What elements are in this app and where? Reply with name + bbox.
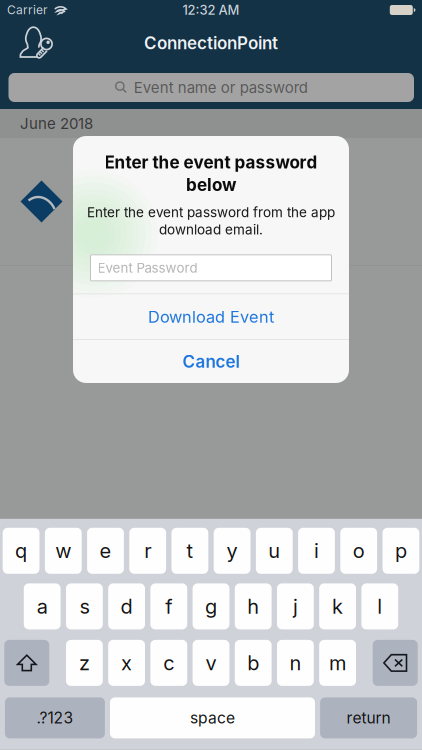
staticText: Carrier: [7, 3, 48, 17]
button[interactable]: e: [87, 528, 124, 574]
button[interactable]: j: [277, 583, 314, 629]
staticText: t: [186, 539, 193, 563]
button[interactable]: n: [277, 640, 314, 686]
button[interactable]: Download Event: [73, 294, 349, 339]
button[interactable]: a: [24, 583, 61, 629]
staticText: s: [79, 594, 89, 618]
staticText: below: [186, 175, 236, 195]
button[interactable]: d: [108, 583, 145, 629]
staticText: l: [377, 594, 382, 618]
button[interactable]: c: [150, 640, 187, 686]
button[interactable]: p: [382, 528, 419, 574]
button[interactable]: Shift: [4, 640, 49, 686]
button[interactable]: f: [150, 583, 187, 629]
button[interactable]: y: [214, 528, 250, 574]
button[interactable]: r: [129, 528, 166, 574]
staticText: p: [395, 539, 407, 563]
staticText: z: [79, 651, 90, 675]
button[interactable]: m: [319, 640, 356, 686]
staticText: h: [247, 594, 259, 618]
staticText: b: [247, 651, 259, 675]
staticText: q: [15, 539, 27, 563]
staticText: Enter the event password: [104, 152, 317, 173]
button[interactable]: .?123: [5, 697, 105, 738]
button[interactable]: g: [193, 583, 229, 629]
button[interactable]: Event name or password: [8, 73, 414, 102]
button[interactable]: b: [235, 640, 272, 686]
staticText: j: [293, 594, 298, 618]
staticText: ConnectionPoint: [144, 33, 278, 53]
staticText: Event name or password: [134, 78, 308, 96]
staticText: w: [55, 539, 71, 563]
button[interactable]: w: [45, 528, 82, 574]
button[interactable]: i: [298, 528, 335, 574]
staticText: Enter the event password from the app: [87, 204, 335, 220]
button[interactable]: Cancel: [73, 340, 349, 383]
staticText: Event Password: [97, 260, 197, 276]
staticText: e: [99, 539, 111, 563]
staticText: c: [163, 651, 174, 675]
staticText: v: [205, 651, 216, 675]
staticText: a: [37, 594, 48, 618]
staticText: k: [332, 594, 343, 618]
button[interactable]: return: [320, 697, 417, 738]
button[interactable]: x: [108, 640, 145, 686]
staticText: Cancel: [182, 351, 239, 372]
staticText: u: [268, 539, 280, 563]
button[interactable]: u: [256, 528, 293, 574]
staticText: r: [144, 539, 151, 563]
button[interactable]: k: [319, 583, 356, 629]
staticText: m: [329, 651, 346, 675]
staticText: 12:32 AM: [182, 2, 239, 18]
button[interactable]: t: [171, 528, 208, 574]
staticText: return: [347, 708, 391, 727]
staticText: y: [227, 539, 238, 563]
staticText: g: [205, 594, 217, 618]
staticText: Download Event: [148, 307, 274, 326]
button[interactable]: l: [361, 583, 398, 629]
staticText: download email.: [159, 221, 263, 238]
button[interactable]: Delete: [373, 640, 418, 686]
staticText: space: [190, 708, 235, 727]
button[interactable]: q: [3, 528, 39, 574]
staticText: n: [289, 651, 301, 675]
staticText: x: [121, 651, 132, 675]
button[interactable]: space: [110, 697, 315, 738]
staticText: f: [165, 594, 172, 618]
staticText: i: [314, 539, 319, 563]
staticText: o: [353, 539, 365, 563]
button[interactable]: o: [340, 528, 377, 574]
staticText: June 2018: [20, 114, 93, 132]
staticText: .?123: [36, 708, 73, 727]
button[interactable]: v: [193, 640, 229, 686]
button[interactable]: s: [66, 583, 103, 629]
button[interactable]: h: [235, 583, 272, 629]
button[interactable]: Account: [14, 21, 58, 65]
staticText: d: [121, 594, 133, 618]
button[interactable]: z: [66, 640, 103, 686]
